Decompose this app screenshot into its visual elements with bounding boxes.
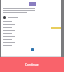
button[interactable] [3,35,61,38]
staticText: Continue [25,63,39,67]
button[interactable] [3,44,61,47]
button[interactable] [3,23,61,26]
button[interactable] [3,26,61,29]
button[interactable] [3,38,61,41]
button[interactable] [3,41,61,44]
button[interactable] [3,20,61,23]
button[interactable]: Continue [0,57,64,72]
button[interactable] [3,32,61,35]
button[interactable] [3,15,61,19]
button[interactable] [3,29,61,32]
